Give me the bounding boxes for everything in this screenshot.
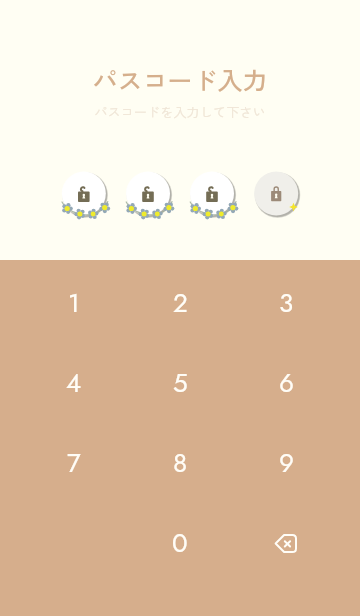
button[interactable]: 6 — [251, 355, 321, 411]
staticText: 6 — [279, 364, 294, 402]
staticText: 1 — [68, 284, 80, 322]
button[interactable]: 1 — [39, 275, 109, 331]
button[interactable]: 8 — [145, 435, 215, 491]
staticText: 5 — [173, 364, 188, 402]
button[interactable]: 4 — [39, 355, 109, 411]
staticText: 7 — [67, 444, 81, 482]
button[interactable]: 3 — [251, 275, 321, 331]
staticText: 4 — [66, 364, 82, 402]
staticText: 3 — [279, 284, 294, 322]
button[interactable]: Backspace — [251, 515, 321, 571]
button[interactable]: 0 — [145, 515, 215, 571]
button[interactable]: 2 — [145, 275, 215, 331]
button[interactable]: 9 — [251, 435, 321, 491]
staticText: 0 — [172, 524, 188, 562]
button[interactable]: 7 — [39, 435, 109, 491]
staticText: パスコード入力 — [92, 61, 268, 97]
staticText: 9 — [279, 444, 294, 482]
staticText: パスコードを入力して下さい — [94, 102, 266, 121]
button[interactable]: 5 — [145, 355, 215, 411]
staticText: 2 — [173, 284, 188, 322]
staticText: 8 — [173, 444, 188, 482]
